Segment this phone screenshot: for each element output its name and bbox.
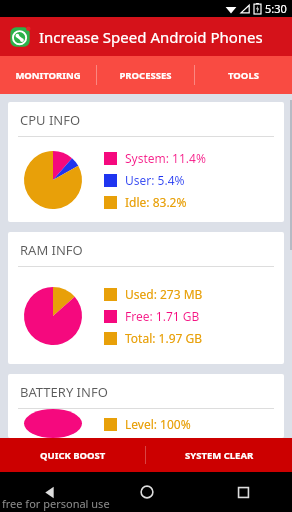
staticText: User: 5.4%	[125, 172, 185, 188]
staticText: TOOLS	[228, 69, 259, 82]
staticText: BATTERY INFO	[20, 383, 108, 401]
staticText: System: 11.4%	[125, 150, 206, 166]
staticText: Total: 1.97 GB	[125, 330, 203, 346]
button[interactable]: SYSTEM CLEAR	[146, 438, 292, 472]
staticText: RAM INFO	[20, 241, 83, 259]
staticText: Increase Speed Android Phones	[39, 27, 263, 47]
button[interactable]: TOOLS	[195, 56, 292, 94]
staticText: Idle: 83.2%	[125, 194, 187, 210]
button[interactable]: RAM INFO	[8, 232, 284, 364]
button[interactable]: QUICK BOOST	[0, 438, 145, 472]
staticText: Free: 1.71 GB	[125, 308, 200, 324]
button[interactable]: Back	[0, 472, 98, 512]
staticText: 5:30	[265, 1, 287, 16]
staticText: MONITORING	[15, 69, 81, 82]
staticText: CPU INFO	[20, 111, 81, 129]
button[interactable]: PROCESSES	[97, 56, 194, 94]
staticText: QUICK BOOST	[40, 449, 106, 462]
staticText: PROCESSES	[119, 69, 172, 82]
button[interactable]: Home	[98, 472, 195, 512]
button[interactable]: BATTERY INFO	[8, 374, 284, 438]
button[interactable]: Recent apps	[195, 472, 292, 512]
staticText: free for personal use	[2, 496, 110, 511]
button[interactable]: CPU INFO	[8, 102, 284, 222]
staticText: SYSTEM CLEAR	[185, 449, 254, 462]
staticText: Used: 273 MB	[125, 286, 203, 302]
staticText: Level: 100%	[125, 416, 191, 432]
button[interactable]: MONITORING	[0, 56, 96, 94]
